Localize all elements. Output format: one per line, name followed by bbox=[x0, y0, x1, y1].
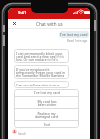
button[interactable]: I can permanently block your card and se… bbox=[14, 49, 69, 63]
staticText: My card has been stolen bbox=[37, 99, 57, 107]
button[interactable]: Can you tell me about your card? bbox=[14, 81, 69, 88]
button[interactable]: My card has been stolen bbox=[14, 97, 79, 108]
button[interactable]: Exit bbox=[14, 121, 79, 128]
staticText: Read 1min ago bbox=[67, 39, 88, 43]
staticText: I've lost my card bbox=[34, 90, 60, 95]
staticText: Chat with us bbox=[36, 21, 63, 27]
button[interactable]: Agent avatar bbox=[12, 129, 17, 134]
button[interactable]: Replace my damaged card bbox=[14, 109, 79, 120]
staticText: If you've misplaced it temporarily freez… bbox=[16, 67, 67, 77]
button[interactable]: If you've misplaced it temporarily freez… bbox=[14, 65, 69, 79]
staticText: Can you tell me about your card? bbox=[16, 83, 67, 86]
button[interactable]: I've lost my card bbox=[59, 31, 89, 38]
button[interactable]: I've lost my card bbox=[14, 89, 79, 96]
staticText: I can permanently block your card and se… bbox=[16, 51, 67, 61]
staticText: I've lost my card bbox=[60, 32, 88, 37]
staticText: Replace my damaged card bbox=[35, 111, 58, 119]
staticText: 9:41 bbox=[18, 10, 27, 16]
button[interactable]: Close chat bbox=[10, 19, 19, 28]
staticText: Exit bbox=[44, 122, 50, 127]
staticText: Sandi bbox=[18, 132, 26, 136]
